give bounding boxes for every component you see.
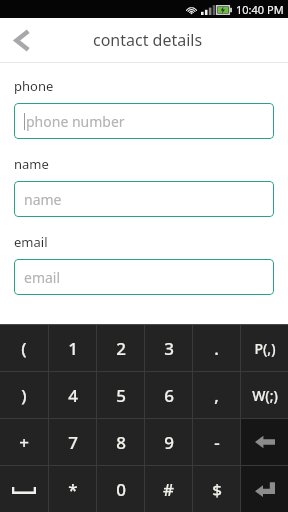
staticText: 3 [164,337,174,360]
staticText: 8 [116,431,126,454]
staticText: 4 [68,384,78,407]
button[interactable]: * [49,466,96,512]
staticText: $ [212,478,222,501]
button[interactable]: + [0,419,48,465]
button[interactable]: # [145,466,192,512]
staticText: 7 [68,431,78,454]
button[interactable]: ( [0,325,48,371]
staticText: , [214,384,219,407]
button[interactable]: , [193,372,240,418]
staticText: # [163,478,174,501]
button[interactable]: 4 [49,372,96,418]
button[interactable]: $ [193,466,240,512]
button[interactable]: . [193,325,240,371]
button[interactable]: Enter [241,466,288,512]
button[interactable]: 1 [49,325,96,371]
staticText: ( [21,337,27,360]
staticText: W(;) [252,386,278,405]
staticText: * [68,478,78,501]
button[interactable]: W(;) [241,372,288,418]
staticText: 1 [68,337,78,360]
staticText: 2 [116,337,126,360]
button[interactable]: 5 [97,372,144,418]
button[interactable]: Backspace [241,419,288,465]
staticText: name [14,155,49,173]
staticText: ) [21,384,27,407]
staticText: + [19,431,29,454]
button[interactable]: Space [0,466,48,512]
button[interactable]: 9 [145,419,192,465]
button[interactable]: ) [0,372,48,418]
button[interactable]: phone number [14,103,274,139]
staticText: name [24,190,62,209]
staticText: phone number [26,112,125,131]
staticText: 5 [116,384,126,407]
staticText: - [214,431,220,454]
button[interactable]: name [14,181,274,217]
staticText: P(,) [254,339,276,358]
button[interactable]: - [193,419,240,465]
staticText: 0 [116,478,126,501]
staticText: email [24,268,61,287]
staticText: . [214,337,219,360]
button[interactable]: P(,) [241,325,288,371]
staticText: phone [14,77,54,95]
staticText: 9 [164,431,174,454]
button[interactable]: 8 [97,419,144,465]
button[interactable]: Back [0,18,44,62]
button[interactable]: 3 [145,325,192,371]
staticText: email [14,233,48,251]
button[interactable]: 7 [49,419,96,465]
button[interactable]: email [14,259,274,295]
staticText: contact details [93,29,203,51]
staticText: 6 [164,384,174,407]
button[interactable]: 6 [145,372,192,418]
staticText: 10:40 PM [236,2,284,17]
button[interactable]: 2 [97,325,144,371]
button[interactable]: 0 [97,466,144,512]
